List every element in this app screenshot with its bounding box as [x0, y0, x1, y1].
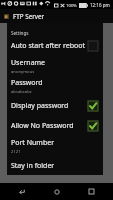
staticText: Settings	[11, 30, 29, 36]
staticText: Display password	[11, 101, 69, 111]
staticText: Allow No Password	[11, 121, 74, 131]
staticText: 100%	[66, 2, 77, 8]
button[interactable]: Display password	[7, 96, 103, 116]
button[interactable]: Allow No Password	[88, 121, 98, 131]
button[interactable]: Auto start after reboot	[88, 41, 98, 51]
staticText: Stay in folder	[11, 161, 55, 171]
staticText: FTP Server	[13, 12, 45, 21]
staticText: Password	[11, 78, 43, 88]
staticText: anonymous	[11, 69, 35, 75]
button[interactable]: Port Number	[7, 136, 103, 156]
staticText: Auto start after reboot	[11, 41, 85, 51]
staticText: 12:16 pm	[90, 2, 110, 8]
staticText: Username	[11, 58, 46, 68]
button[interactable]: Stay in folder	[7, 156, 103, 175]
button[interactable]: Password	[7, 76, 103, 96]
staticText: Port Number	[11, 138, 55, 148]
button[interactable]: Username	[7, 56, 103, 76]
staticText: 2121	[11, 149, 21, 155]
button[interactable]: Recent apps	[79, 183, 103, 200]
button[interactable]: Display password	[88, 101, 98, 111]
button[interactable]: Home	[45, 183, 69, 200]
button[interactable]: Auto start after reboot	[7, 36, 103, 56]
staticText: abcabcabc	[11, 89, 32, 95]
button[interactable]: Back	[10, 183, 34, 200]
button[interactable]: Allow No Password	[7, 116, 103, 136]
